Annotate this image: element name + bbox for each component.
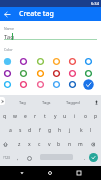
button[interactable]: r xyxy=(30,110,40,122)
staticText: Name xyxy=(4,26,14,31)
staticText: t xyxy=(44,113,46,120)
button[interactable] xyxy=(35,79,46,90)
staticText: h xyxy=(58,127,62,134)
staticText: f xyxy=(39,127,41,134)
button[interactable]: f xyxy=(35,124,45,136)
staticText: Tag xyxy=(19,100,26,105)
button[interactable]: t xyxy=(40,110,50,122)
staticText: o xyxy=(84,113,88,120)
staticText: c xyxy=(38,141,41,148)
button[interactable] xyxy=(67,79,78,90)
button[interactable]: c xyxy=(34,138,44,150)
staticText: ?123 xyxy=(3,156,10,160)
staticText: n xyxy=(68,141,72,148)
staticText: p xyxy=(94,113,98,120)
button[interactable] xyxy=(35,56,46,67)
staticText: Tags xyxy=(42,100,51,105)
staticText: x xyxy=(28,141,31,148)
button[interactable]: . xyxy=(80,152,90,164)
button[interactable]: Shift xyxy=(0,138,10,150)
button[interactable]: Tags xyxy=(34,95,58,109)
staticText: i xyxy=(74,113,76,120)
button[interactable]: i xyxy=(70,110,80,122)
button[interactable]: Back xyxy=(0,7,14,21)
staticText: u xyxy=(63,113,67,120)
button[interactable] xyxy=(51,68,62,79)
staticText: m xyxy=(78,141,83,148)
staticText: e xyxy=(24,113,27,120)
button[interactable]: l xyxy=(86,124,96,136)
button[interactable] xyxy=(2,68,13,79)
staticText: z xyxy=(18,141,21,148)
staticText: 6:34 xyxy=(91,1,99,6)
button[interactable]: Backspace xyxy=(87,138,97,150)
button[interactable]: a xyxy=(5,124,15,136)
button[interactable] xyxy=(83,68,94,79)
staticText: s xyxy=(19,127,22,134)
button[interactable]: y xyxy=(50,110,60,122)
button[interactable]: m xyxy=(75,138,85,150)
staticText: k xyxy=(80,127,83,134)
button[interactable] xyxy=(67,56,78,67)
button[interactable]: Enter xyxy=(89,153,98,162)
staticText: g xyxy=(48,127,52,134)
button[interactable] xyxy=(83,79,94,90)
button[interactable]: z xyxy=(14,138,24,150)
staticText: a xyxy=(9,127,12,134)
button[interactable] xyxy=(2,79,13,90)
button[interactable]: Home xyxy=(44,166,56,180)
staticText: Tag xyxy=(4,33,14,41)
button[interactable]: n xyxy=(65,138,75,150)
button[interactable]: w xyxy=(10,110,20,122)
button[interactable]: h xyxy=(55,124,65,136)
button[interactable]: g xyxy=(45,124,55,136)
staticText: d xyxy=(28,127,32,134)
button[interactable]: e xyxy=(20,110,30,122)
button[interactable]: ?123 xyxy=(1,152,11,164)
staticText: , xyxy=(17,155,19,162)
button[interactable]: Voice input xyxy=(91,97,101,107)
staticText: q xyxy=(3,113,7,120)
button[interactable] xyxy=(2,56,13,67)
staticText: b xyxy=(57,141,61,148)
button[interactable]: u xyxy=(60,110,70,122)
button[interactable]: Tag xyxy=(10,95,34,109)
button[interactable]: Tagged xyxy=(61,95,85,109)
staticText: l xyxy=(90,127,92,134)
staticText: w xyxy=(13,113,17,120)
button[interactable]: Emoji xyxy=(24,152,34,164)
button[interactable] xyxy=(18,79,29,90)
button[interactable]: o xyxy=(81,110,91,122)
staticText: Color xyxy=(4,47,13,52)
button[interactable]: b xyxy=(54,138,64,150)
button[interactable]: v xyxy=(44,138,54,150)
button[interactable]: s xyxy=(15,124,25,136)
button[interactable]: Back xyxy=(16,166,28,180)
button[interactable] xyxy=(67,68,78,79)
button[interactable] xyxy=(18,56,29,67)
button[interactable]: d xyxy=(25,124,35,136)
button[interactable]: Recent apps xyxy=(73,166,85,180)
staticText: Create tag xyxy=(19,9,54,19)
button[interactable]: , xyxy=(13,152,23,164)
button[interactable] xyxy=(51,56,62,67)
button[interactable]: p xyxy=(91,110,101,122)
button[interactable] xyxy=(18,68,29,79)
button[interactable]: x xyxy=(24,138,34,150)
staticText: . xyxy=(84,155,86,162)
button[interactable]: k xyxy=(76,124,86,136)
staticText: y xyxy=(54,113,57,120)
button[interactable] xyxy=(35,68,46,79)
staticText: j xyxy=(69,127,71,134)
button[interactable] xyxy=(83,56,94,67)
button[interactable]: q xyxy=(0,110,10,122)
staticText: Tagged xyxy=(66,100,80,105)
staticText: r xyxy=(34,113,37,120)
button[interactable]: Expand suggestions xyxy=(0,97,5,105)
button[interactable] xyxy=(51,79,62,90)
staticText: v xyxy=(48,141,51,148)
button[interactable]: j xyxy=(65,124,75,136)
